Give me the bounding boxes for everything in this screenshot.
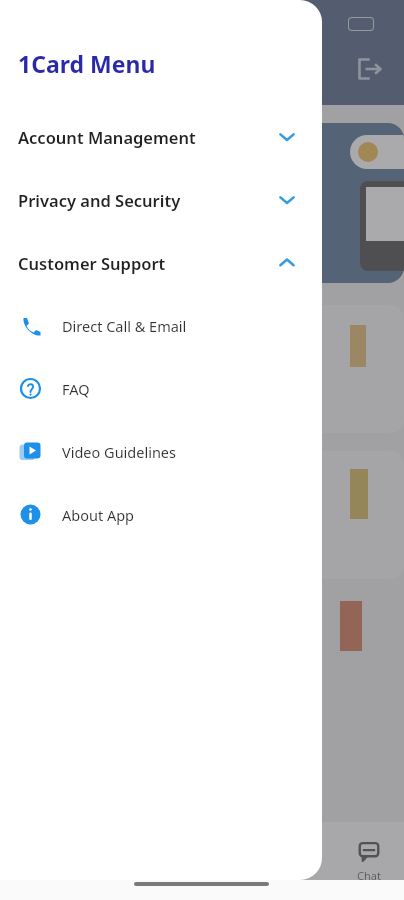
staticText: 1Card Menu [18,48,156,79]
button[interactable]: Video Guidelines [0,435,322,468]
button[interactable]: Customer Support [0,246,322,279]
button[interactable]: Account Management [0,120,322,153]
button[interactable]: Chat [334,840,404,883]
staticText: Video Guidelines [62,442,176,462]
button[interactable]: FAQ [0,372,322,405]
staticText: Customer Support [18,252,166,274]
staticText: Account Management [18,126,196,148]
button[interactable]: About App [0,498,322,531]
staticText: Privacy and Security [18,189,181,211]
staticText: FAQ [62,379,90,399]
staticText: Direct Call & Email [62,316,187,336]
staticText: Chat [357,868,381,883]
button[interactable]: Log out [352,52,386,86]
button[interactable]: Direct Call & Email [0,309,322,342]
button[interactable]: Privacy and Security [0,183,322,216]
staticText: About App [62,505,135,525]
